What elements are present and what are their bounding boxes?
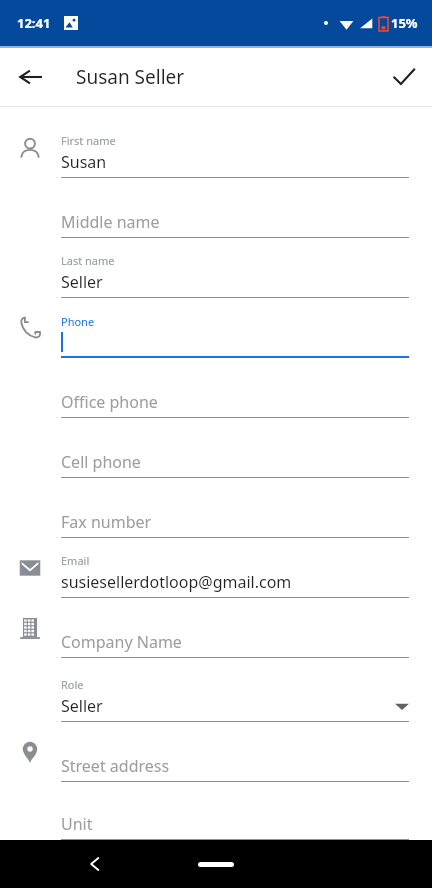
staticText: Cell phone — [61, 451, 141, 473]
button[interactable]: Home — [198, 862, 234, 867]
other: Address — [16, 738, 44, 766]
staticText: Seller — [61, 271, 103, 293]
other: Phone — [16, 314, 44, 342]
button[interactable]: Fax number — [0, 478, 432, 538]
staticText: Susan — [61, 151, 107, 173]
button[interactable]: Company — [0, 598, 432, 658]
staticText: Office phone — [61, 391, 158, 413]
staticText: Role — [61, 677, 84, 692]
button[interactable]: Back — [78, 847, 112, 881]
button[interactable]: Role — [0, 658, 432, 722]
other: Company — [16, 614, 44, 642]
staticText: susiesellerdotloop@gmail.com — [61, 571, 292, 593]
staticText: Street address — [61, 755, 170, 777]
button[interactable]: Name — [0, 118, 432, 178]
button[interactable]: Address — [0, 722, 432, 782]
staticText: Unit — [61, 813, 93, 835]
staticText: First name — [61, 133, 116, 148]
staticText: Seller — [61, 695, 103, 717]
staticText: Last name — [61, 253, 115, 268]
button[interactable]: Office phone — [0, 358, 432, 418]
staticText: Phone — [61, 314, 95, 329]
staticText: 15% — [391, 14, 418, 32]
staticText: 12:41 — [17, 14, 51, 32]
button[interactable]: Last name — [0, 238, 432, 298]
other: Name — [16, 134, 44, 162]
button[interactable]: Back — [14, 60, 48, 94]
button[interactable]: Phone — [0, 298, 432, 358]
staticText: Company Name — [61, 631, 182, 653]
button[interactable]: Save — [387, 60, 421, 94]
button[interactable]: Unit — [0, 782, 432, 840]
other: Email — [16, 554, 44, 582]
button[interactable]: Email — [0, 538, 432, 598]
staticText: Email — [61, 553, 90, 568]
button[interactable]: Middle name — [0, 178, 432, 238]
staticText: Fax number — [61, 511, 152, 533]
staticText: Middle name — [61, 211, 160, 233]
button[interactable]: Cell phone — [0, 418, 432, 478]
staticText: Susan Seller — [76, 64, 185, 90]
